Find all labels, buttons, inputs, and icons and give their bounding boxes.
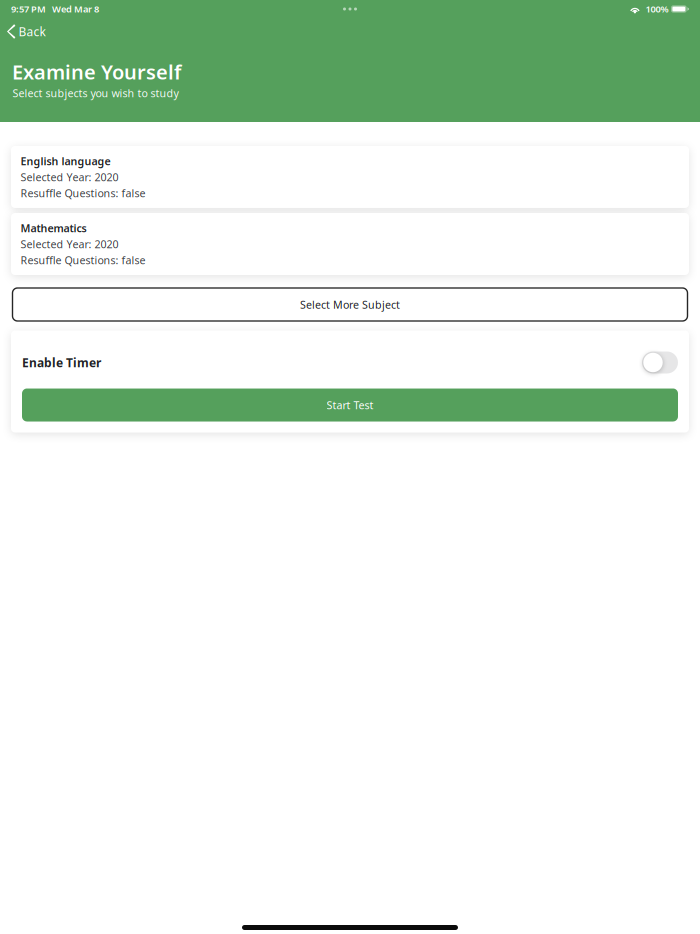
staticText: Selected Year: 2020 bbox=[20, 170, 118, 184]
button[interactable]: Back bbox=[0, 20, 55, 42]
staticText: Mathematics bbox=[20, 221, 86, 235]
staticText: 9:57 PM bbox=[11, 3, 46, 15]
staticText: Resuffle Questions: false bbox=[20, 186, 145, 200]
staticText: Resuffle Questions: false bbox=[20, 253, 145, 267]
staticText: Select subjects you wish to study bbox=[12, 86, 178, 100]
button[interactable]: Enable Timer bbox=[642, 351, 678, 373]
button[interactable]: Start Test bbox=[22, 388, 678, 421]
staticText: Wed Mar 8 bbox=[52, 3, 99, 15]
staticText: Back bbox=[19, 23, 46, 39]
staticText: Selected Year: 2020 bbox=[20, 237, 118, 251]
button[interactable]: Mathematics bbox=[11, 213, 689, 275]
staticText: Select More Subject bbox=[300, 297, 400, 312]
staticText: 100% bbox=[646, 3, 669, 15]
staticText: Start Test bbox=[326, 398, 373, 412]
staticText: Enable Timer bbox=[22, 354, 101, 370]
staticText: English language bbox=[20, 154, 110, 168]
button[interactable]: English language bbox=[11, 146, 689, 208]
staticText: Examine Yourself bbox=[12, 58, 181, 85]
button[interactable]: Select More Subject bbox=[11, 288, 689, 321]
